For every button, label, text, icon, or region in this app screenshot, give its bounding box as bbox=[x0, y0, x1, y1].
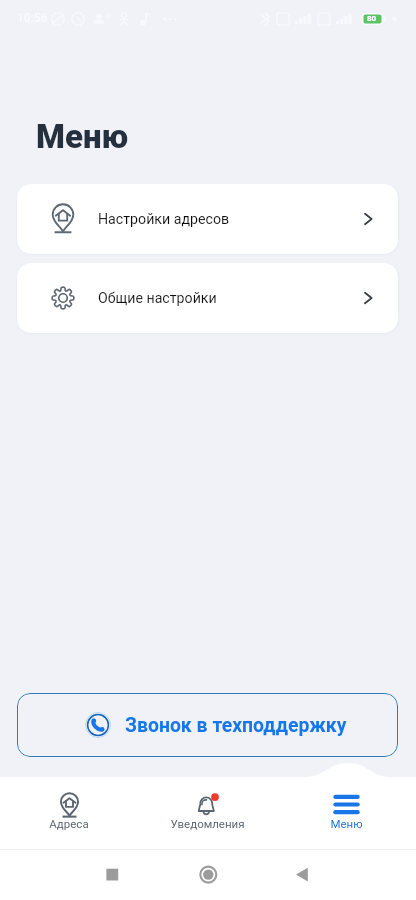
staticText: Уведомления bbox=[170, 817, 245, 830]
button[interactable]: Общие настройки bbox=[17, 263, 398, 333]
staticText: Настройки адресов bbox=[98, 211, 230, 228]
button[interactable]: Звонок в техподдержку bbox=[17, 693, 398, 757]
staticText: Меню bbox=[36, 117, 129, 156]
staticText: Адреса bbox=[49, 817, 89, 830]
staticText: 10:56 bbox=[17, 11, 48, 25]
staticText: Общие настройки bbox=[98, 290, 217, 307]
button[interactable]: Уведомления bbox=[138, 775, 277, 849]
button[interactable]: Меню bbox=[277, 775, 416, 849]
staticText: Звонок в техподдержку bbox=[125, 714, 347, 737]
staticText: Меню bbox=[330, 817, 363, 830]
button[interactable]: Адреса bbox=[0, 775, 138, 849]
staticText: 80 bbox=[367, 14, 377, 23]
button[interactable]: Настройки адресов bbox=[17, 184, 398, 254]
